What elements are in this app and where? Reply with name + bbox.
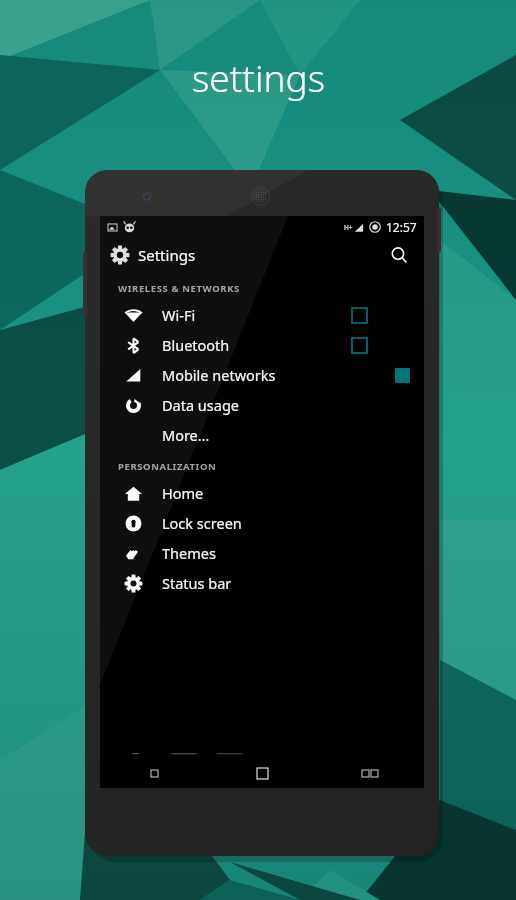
button[interactable] — [352, 308, 367, 323]
button[interactable]: Home — [208, 758, 316, 788]
staticText: 12:57 — [386, 219, 417, 235]
button[interactable]: Bluetooth — [100, 330, 424, 360]
button[interactable]: Home — [100, 478, 424, 508]
staticText: Lock screen — [162, 513, 242, 533]
staticText: Status bar — [162, 573, 232, 593]
button[interactable]: Wi-Fi — [100, 300, 424, 330]
staticText: Mobile networks — [162, 365, 276, 385]
button[interactable] — [352, 338, 367, 353]
button[interactable]: Themes — [100, 538, 424, 568]
button[interactable]: Lock screen — [100, 508, 424, 538]
staticText: Wi-Fi — [162, 305, 196, 325]
staticText: WIRELESS & NETWORKS — [118, 282, 240, 295]
button[interactable]: More… — [100, 420, 424, 450]
button[interactable]: Mobile networks — [100, 360, 424, 390]
button[interactable]: Data usage — [100, 390, 424, 420]
button[interactable]: Back — [100, 758, 208, 788]
button[interactable]: Status bar — [100, 568, 424, 598]
staticText: Data usage — [162, 395, 239, 415]
staticText: More… — [162, 425, 210, 445]
staticText: PERSONALIZATION — [118, 460, 217, 473]
staticText: Settings — [138, 245, 196, 265]
staticText: settings — [192, 52, 325, 102]
button[interactable]: Search — [386, 242, 412, 268]
staticText: Bluetooth — [162, 335, 230, 355]
staticText: Themes — [162, 543, 216, 563]
staticText: Home — [162, 483, 204, 503]
staticText: H+ — [344, 223, 353, 232]
button[interactable] — [395, 368, 410, 383]
button[interactable]: Recents — [316, 758, 424, 788]
